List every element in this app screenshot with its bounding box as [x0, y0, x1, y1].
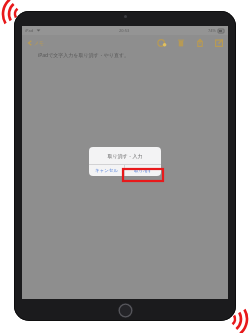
staticText: iPad: [25, 28, 34, 33]
staticText: iPadで文字入力を取り消す・やり直す。: [38, 52, 130, 59]
staticText: 20:53: [119, 28, 130, 33]
button[interactable]: Share: [195, 38, 205, 48]
button[interactable]: New note: [214, 38, 224, 48]
staticText: 取り消す: [134, 168, 153, 174]
button[interactable]: Delete: [176, 38, 186, 48]
button[interactable]: 取り消す: [125, 165, 161, 176]
staticText: 取り消す・入力: [107, 153, 143, 159]
staticText: 74%: [208, 28, 216, 33]
button[interactable]: Lock note: [157, 38, 167, 48]
button[interactable]: メモ: [26, 39, 46, 47]
staticText: キャンセル: [95, 168, 119, 174]
button[interactable]: Home: [118, 303, 133, 318]
staticText: メモ: [34, 40, 45, 46]
button[interactable]: キャンセル: [89, 165, 124, 176]
